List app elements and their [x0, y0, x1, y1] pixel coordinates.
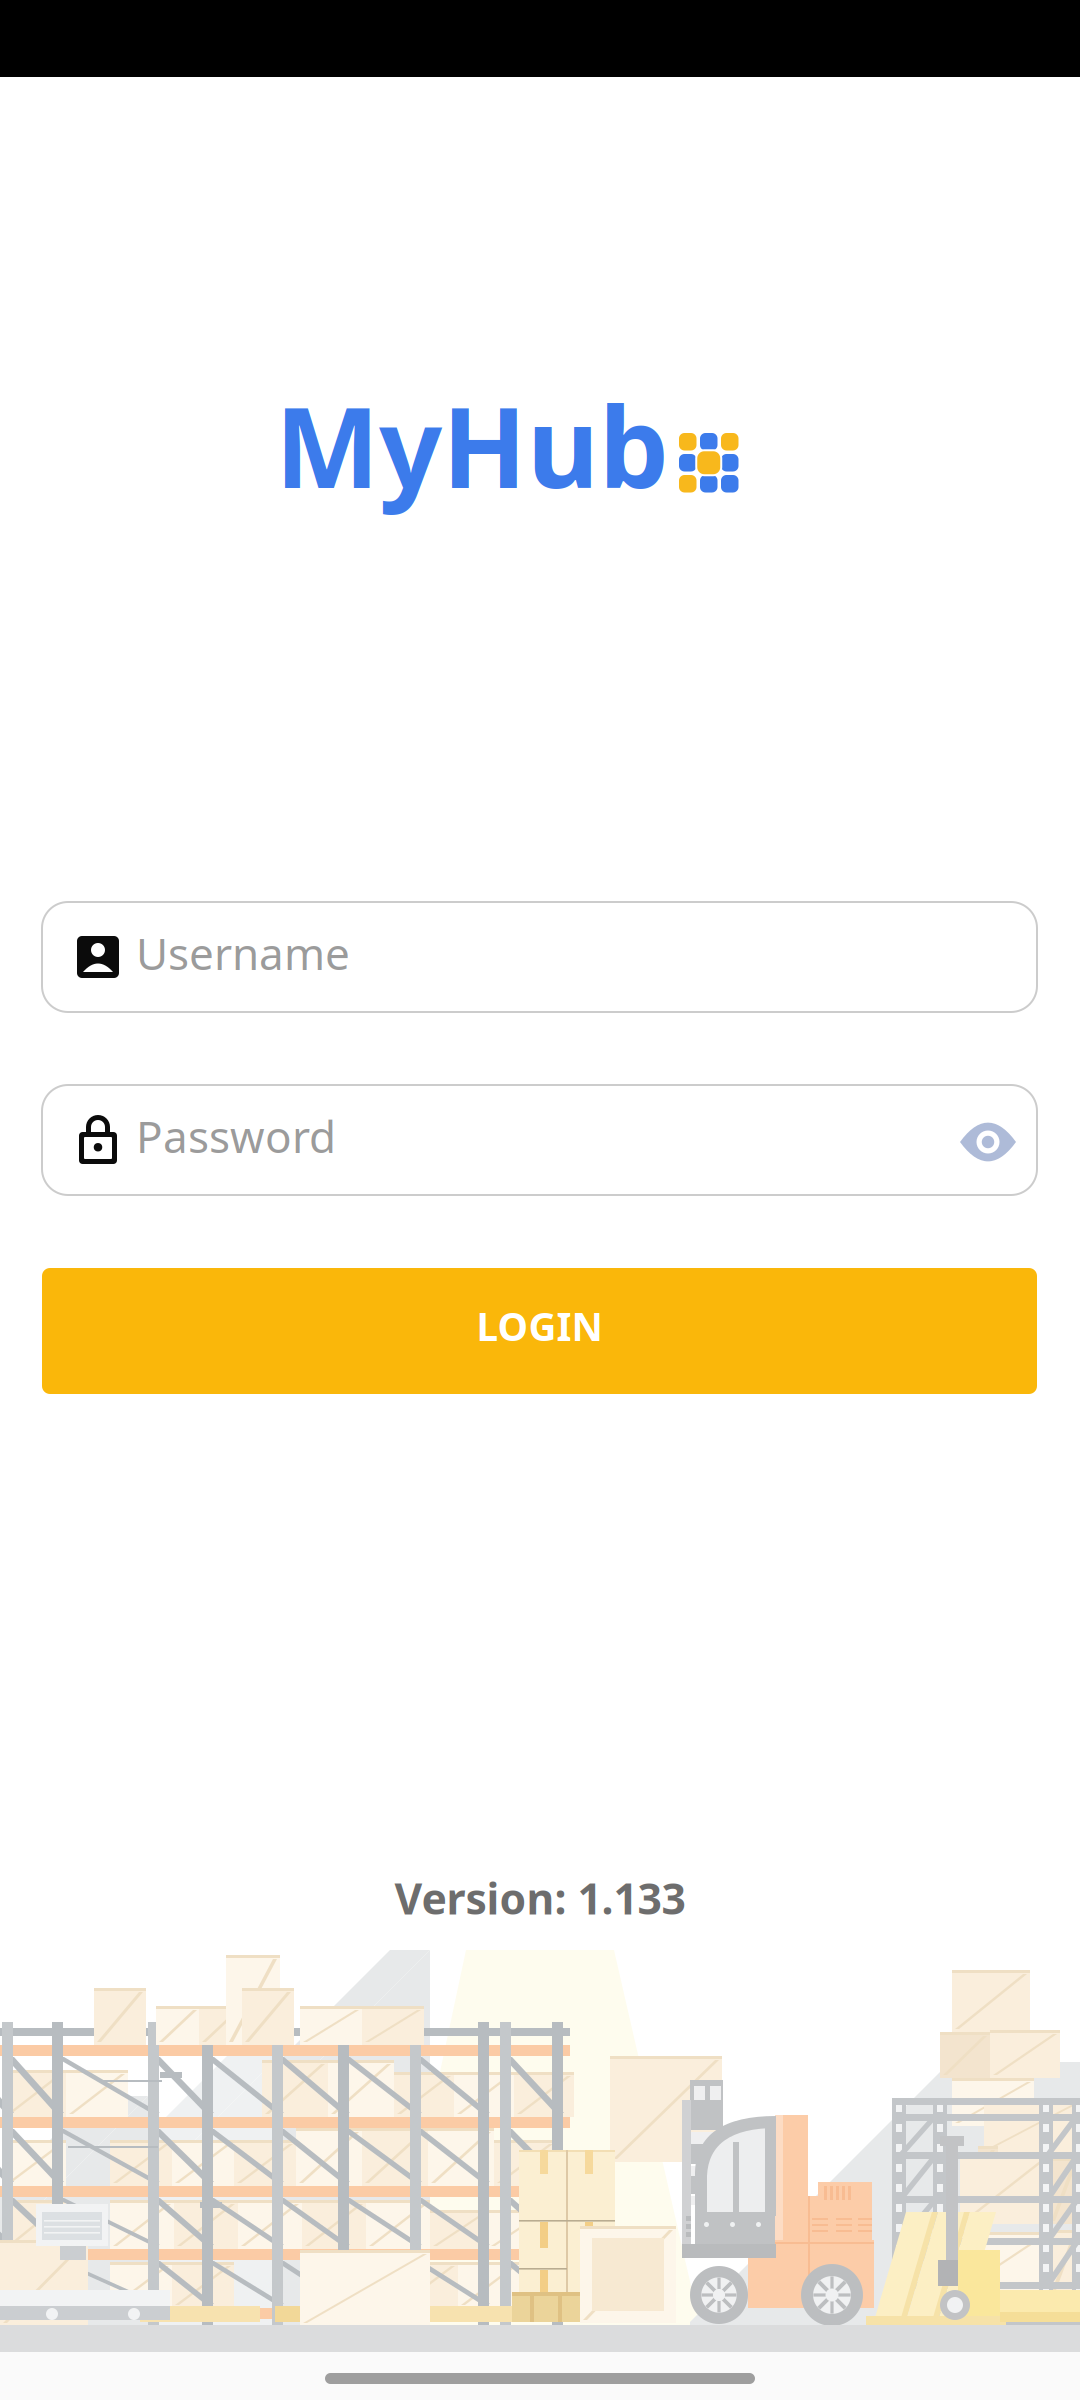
staticText: Version: 1.133 — [394, 1870, 685, 1926]
staticText: MyHub — [275, 371, 669, 518]
staticText: Username — [136, 924, 350, 982]
staticText: Password — [136, 1107, 336, 1165]
staticText: LOGIN — [476, 1300, 602, 1352]
button[interactable]: LOGIN — [42, 1268, 1037, 1394]
